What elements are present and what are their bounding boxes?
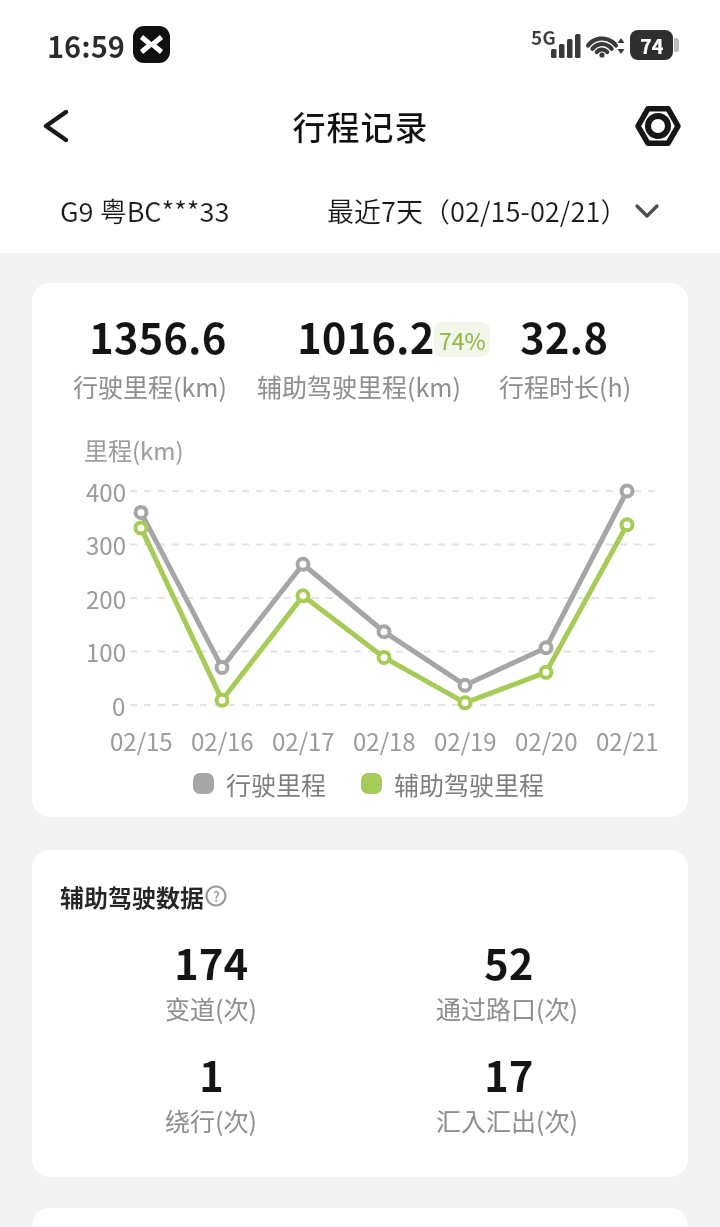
staticText: 1356.6 bbox=[89, 305, 227, 366]
staticText: G9 粤BC***33 bbox=[60, 191, 230, 230]
staticText: 200 bbox=[86, 581, 126, 616]
staticText: 02/17 bbox=[272, 723, 335, 758]
staticText: 汇入汇出(次) bbox=[436, 1102, 578, 1138]
staticText: 辅助驾驶里程(km) bbox=[257, 368, 461, 404]
button[interactable]: 最近7天（02/15-02/21） bbox=[258, 180, 658, 240]
staticText: 300 bbox=[86, 527, 126, 562]
staticText: 02/16 bbox=[191, 723, 254, 758]
staticText: 74% bbox=[439, 323, 486, 356]
staticText: 02/15 bbox=[110, 723, 173, 758]
staticText: 32.8 bbox=[520, 305, 608, 366]
staticText: 02/18 bbox=[353, 723, 416, 758]
staticText: 52 bbox=[484, 931, 534, 992]
staticText: 辅助驾驶里程 bbox=[394, 766, 545, 800]
staticText: 通过路口(次) bbox=[436, 990, 578, 1026]
staticText: 绕行(次) bbox=[165, 1102, 257, 1138]
button[interactable] bbox=[634, 102, 682, 150]
staticText: 02/21 bbox=[596, 723, 659, 758]
staticText: 16:59 bbox=[47, 24, 125, 66]
staticText: 行程记录 bbox=[292, 102, 428, 150]
staticText: 行驶里程 bbox=[226, 766, 327, 800]
staticText: 里程(km) bbox=[84, 432, 184, 467]
staticText: 最近7天（02/15-02/21） bbox=[327, 191, 628, 230]
staticText: 行程时长(h) bbox=[499, 368, 632, 404]
staticText: 辅助驾驶数据 bbox=[60, 879, 204, 914]
staticText: 02/20 bbox=[515, 723, 578, 758]
staticText: 17 bbox=[484, 1043, 534, 1104]
staticText: 74 bbox=[640, 31, 664, 60]
staticText: 174 bbox=[174, 931, 249, 992]
staticText: 变道(次) bbox=[165, 990, 257, 1026]
staticText: 02/19 bbox=[434, 723, 497, 758]
staticText: 行驶里程(km) bbox=[73, 368, 227, 404]
staticText: 5G bbox=[531, 23, 556, 51]
staticText: 1 bbox=[199, 1043, 224, 1104]
staticText: 1016.2 bbox=[297, 305, 435, 366]
staticText: 400 bbox=[86, 474, 126, 509]
staticText: 100 bbox=[86, 634, 126, 669]
staticText: 0 bbox=[112, 688, 126, 723]
button[interactable] bbox=[36, 106, 80, 146]
staticText: ? bbox=[213, 886, 220, 906]
